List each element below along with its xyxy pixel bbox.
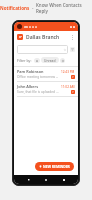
staticText: NEW REMINDER (43, 164, 70, 169)
staticText: Dallas Branch (26, 34, 60, 41)
button[interactable]: More options (70, 33, 75, 42)
button[interactable]: NEW REMINDER (35, 162, 74, 171)
staticText: Pam Robinson (17, 69, 44, 74)
button[interactable]: Unread badge (71, 75, 75, 79)
button[interactable]: Unread badge (71, 90, 75, 94)
button[interactable]: John Albers (14, 82, 78, 96)
staticText: Filter by: (17, 58, 32, 63)
button[interactable]: App icon (17, 34, 23, 40)
staticText: Office meeting tomorrow at 10 am sharp. … (17, 75, 59, 79)
button[interactable]: Filter by person (34, 58, 40, 63)
staticText: John Albers (17, 84, 39, 89)
button[interactable]: Recent apps (61, 177, 67, 183)
button[interactable]: Pam Robinson (14, 67, 78, 81)
staticText: 12:43 PM (61, 70, 75, 74)
button[interactable]: Unread (41, 57, 59, 63)
staticText: Sure, that file is uploaded to the share… (17, 90, 59, 94)
staticText: Notifications (0, 5, 30, 11)
staticText: - (32, 5, 34, 11)
staticText: Know When Contacts Reply (36, 2, 92, 14)
button[interactable]: Filter (70, 47, 75, 52)
button[interactable]: More filters (60, 58, 65, 63)
button[interactable] (17, 45, 68, 54)
staticText: Unread (44, 58, 56, 62)
staticText: 11:02 AM (61, 85, 75, 89)
button[interactable]: Home (43, 177, 49, 183)
button[interactable]: Back (26, 177, 32, 183)
